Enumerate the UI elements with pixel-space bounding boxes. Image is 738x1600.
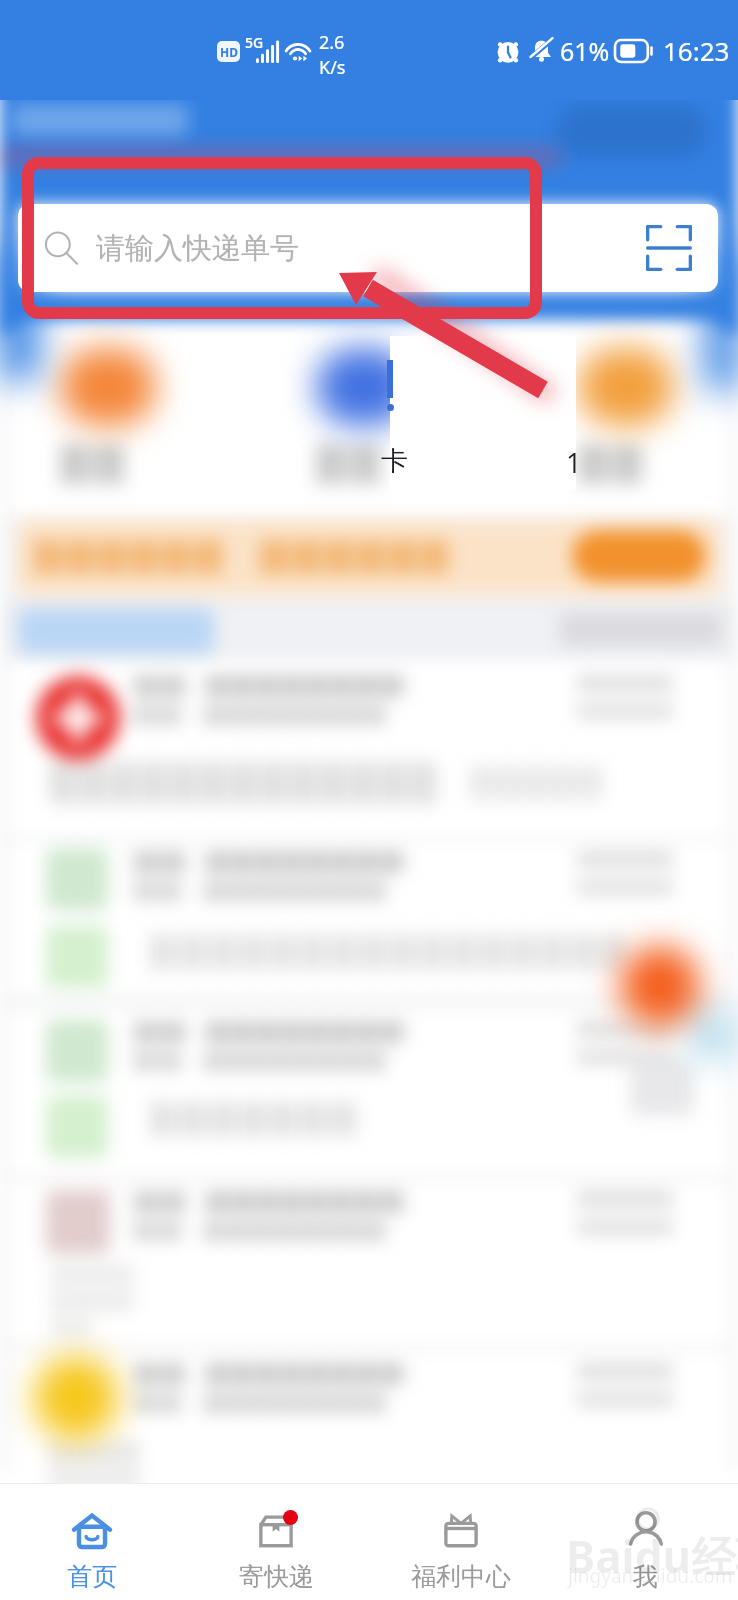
button[interactable]: 我: [553, 1492, 738, 1600]
staticText: 16:23: [663, 33, 730, 68]
button[interactable]: 福利中心: [368, 1492, 553, 1600]
staticText: 2.6: [319, 30, 345, 55]
staticText: 首页: [67, 1561, 117, 1592]
staticText: 1: [566, 444, 582, 481]
staticText: Baidu经验: [566, 1526, 738, 1586]
button[interactable]: 请输入快递单号: [18, 204, 718, 292]
staticText: HD: [220, 44, 238, 60]
staticText: K/s: [319, 55, 346, 80]
staticText: 福利中心: [411, 1561, 511, 1592]
staticText: 我: [633, 1561, 658, 1592]
staticText: 寄快递: [239, 1561, 314, 1592]
button[interactable]: 首页: [0, 1492, 184, 1600]
button[interactable]: Scan barcode: [646, 225, 692, 271]
staticText: 请输入快递单号: [96, 230, 299, 267]
button[interactable]: 寄快递: [184, 1492, 368, 1600]
staticText: jingyan.baidu.com: [568, 1563, 733, 1589]
staticText: 61%: [560, 34, 610, 68]
staticText: 卡: [381, 444, 408, 478]
staticText: 5G: [245, 33, 264, 52]
